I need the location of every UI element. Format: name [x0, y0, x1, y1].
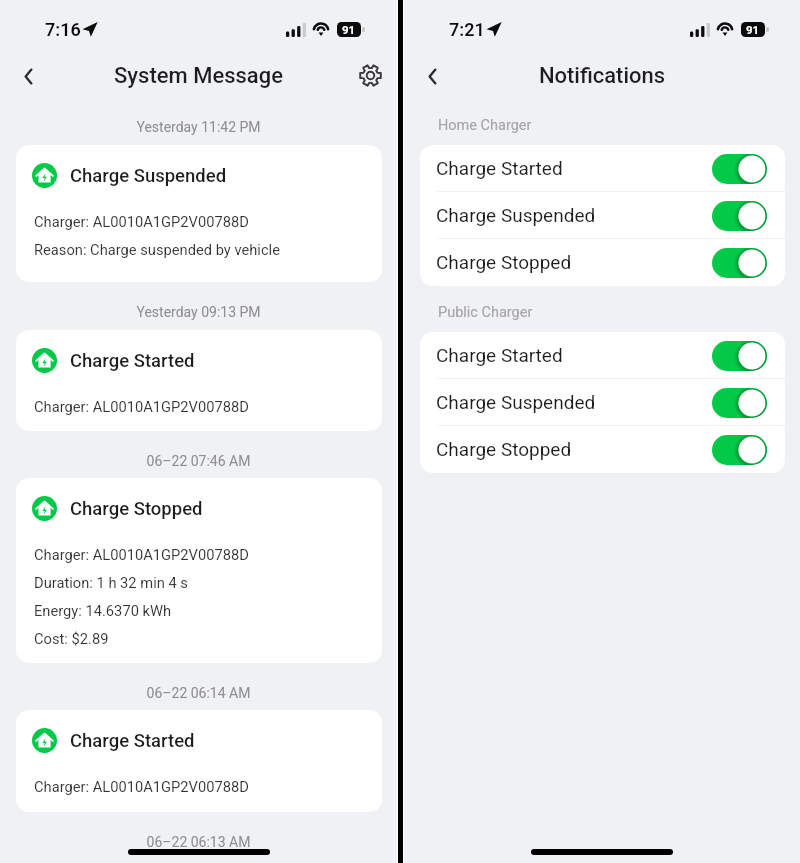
staticText: Charge Started: [70, 730, 195, 752]
staticText: Charger: AL0010A1GP2V00788D: [34, 398, 249, 415]
staticText: Yesterday 09:13 PM: [0, 304, 397, 320]
staticText: 7:21: [449, 19, 485, 40]
button[interactable]: Back: [13, 60, 45, 92]
button[interactable]: Charge Started: [420, 332, 785, 379]
staticText: Duration: 1 h 32 min 4 s: [34, 574, 188, 591]
staticText: 91: [746, 23, 760, 36]
staticText: System Message: [0, 63, 397, 89]
staticText: 91: [342, 23, 356, 36]
staticText: Charge Started: [70, 350, 195, 372]
button[interactable]: Charge Stopped: [16, 478, 382, 663]
staticText: Reason: Charge suspended by vehicle: [34, 241, 280, 258]
staticText: Charge Started: [436, 344, 563, 366]
staticText: 06–22 07:46 AM: [0, 453, 397, 469]
button[interactable]: Charge Stopped: [420, 239, 785, 286]
staticText: 7:16: [45, 19, 81, 40]
staticText: Charger: AL0010A1GP2V00788D: [34, 546, 249, 563]
staticText: Cost: $2.89: [34, 630, 109, 647]
staticText: Public Charger: [438, 304, 533, 321]
staticText: Notifications: [404, 63, 800, 89]
staticText: Home Charger: [438, 117, 532, 134]
staticText: Yesterday 11:42 PM: [0, 119, 397, 135]
staticText: Charge Stopped: [436, 438, 572, 460]
staticText: 06–22 06:13 AM: [0, 834, 397, 850]
button[interactable]: Charge Started: [16, 710, 382, 812]
button[interactable]: Charge Suspended: [420, 379, 785, 426]
button[interactable]: Charge Started: [420, 145, 785, 192]
button[interactable]: Charge Started: [16, 330, 382, 431]
staticText: Charge Stopped: [436, 251, 572, 273]
button[interactable]: Charge Suspended: [420, 192, 785, 239]
staticText: Charge Started: [436, 157, 563, 179]
staticText: Charge Stopped: [70, 498, 203, 520]
staticText: Charge Suspended: [70, 165, 227, 187]
staticText: 06–22 06:14 AM: [0, 685, 397, 701]
staticText: Charge Suspended: [436, 391, 596, 413]
button[interactable]: Charge Suspended: [16, 145, 382, 282]
button[interactable]: Charge Stopped: [420, 426, 785, 473]
staticText: Charger: AL0010A1GP2V00788D: [34, 213, 249, 230]
staticText: Charger: AL0010A1GP2V00788D: [34, 778, 249, 795]
button[interactable]: Settings: [354, 59, 386, 91]
button[interactable]: Back: [417, 60, 449, 92]
staticText: Charge Suspended: [436, 204, 596, 226]
staticText: Energy: 14.6370 kWh: [34, 602, 172, 619]
